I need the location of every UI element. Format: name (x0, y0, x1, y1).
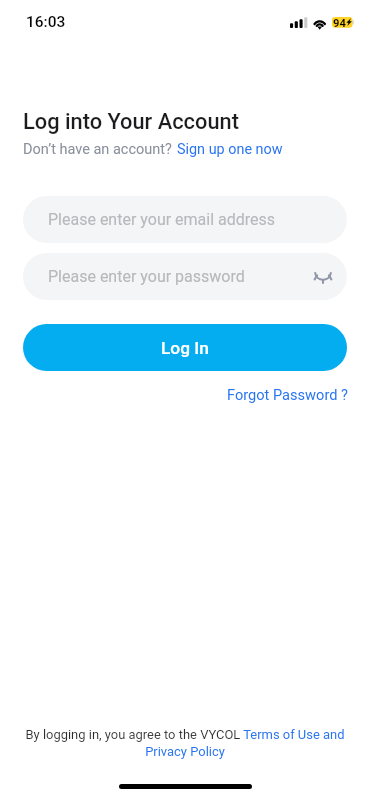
staticText: Log into Your Account (23, 109, 239, 135)
button[interactable]: Show password (311, 265, 335, 289)
staticText: 16:03 (26, 13, 66, 31)
button[interactable]: Forgot Password ? (227, 386, 348, 403)
button[interactable]: Please enter your password (23, 253, 347, 300)
staticText: Please enter your password (48, 267, 245, 286)
staticText: Please enter your email address (48, 210, 276, 229)
button[interactable]: Sign up one now (177, 141, 283, 158)
button[interactable]: Please enter your email address (23, 196, 347, 243)
button[interactable]: By logging in, you agree to the VYCOL Te… (22, 727, 348, 760)
staticText: Don’t have an account? (23, 141, 172, 158)
staticText: 94 (333, 17, 346, 30)
staticText: Sign up one now (177, 141, 283, 158)
button[interactable]: Log In (23, 324, 347, 371)
staticText: Log In (161, 338, 209, 358)
staticText: Forgot Password ? (227, 386, 348, 403)
